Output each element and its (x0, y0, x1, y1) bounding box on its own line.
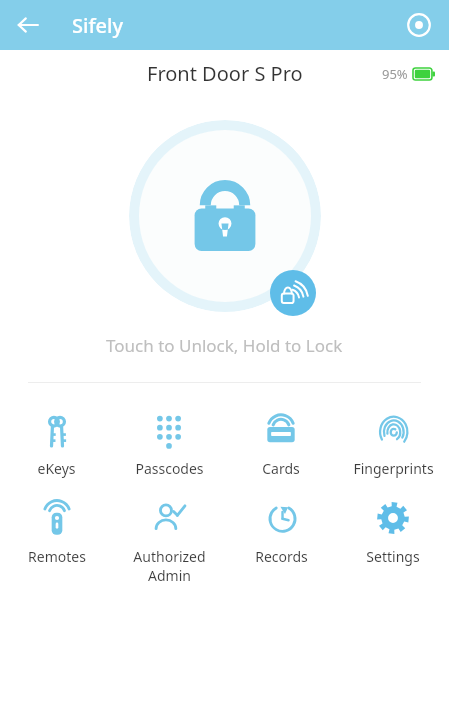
button[interactable]: Remotes (0, 495, 113, 570)
button[interactable]: Cards (225, 407, 337, 482)
staticText: 95% (382, 65, 408, 83)
button[interactable]: Back (8, 5, 48, 45)
button[interactable]: Authorized Admin (113, 495, 225, 589)
staticText: Records (255, 547, 308, 566)
staticText: Front Door S Pro (147, 60, 303, 87)
button[interactable]: Fingerprints (337, 407, 449, 482)
button[interactable]: Touch to Unlock, Hold to Lock (129, 120, 321, 312)
button[interactable]: Remote unlock (270, 270, 316, 316)
staticText: Sifely (72, 12, 123, 39)
staticText: Fingerprints (353, 459, 434, 478)
staticText: Touch to Unlock, Hold to Lock (106, 334, 343, 357)
button[interactable]: Passcodes (113, 407, 225, 482)
staticText: eKeys (37, 459, 76, 478)
staticText: Remotes (28, 547, 86, 566)
button[interactable]: eKeys (0, 407, 113, 482)
staticText: Settings (366, 547, 420, 566)
staticText: Cards (262, 459, 300, 478)
button[interactable]: Settings (337, 495, 449, 570)
button[interactable]: Records (225, 495, 337, 570)
staticText: Authorized Admin (133, 547, 206, 585)
button[interactable]: Record (399, 5, 439, 45)
staticText: Passcodes (135, 459, 204, 478)
